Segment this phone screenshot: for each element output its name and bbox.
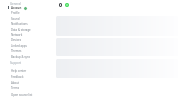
- button[interactable]: Profile: [0, 10, 52, 16]
- staticText: Linked apps: [11, 44, 27, 48]
- button[interactable]: Linked apps: [0, 43, 52, 49]
- button[interactable]: [56, 16, 178, 36]
- staticText: Open source list: [11, 93, 33, 97]
- staticText: Network: [11, 33, 23, 37]
- staticText: Help center: [11, 69, 27, 73]
- staticText: About: [11, 81, 19, 85]
- staticText: Accoun: [11, 6, 22, 10]
- staticText: Profile: [11, 11, 20, 15]
- button[interactable]: Accoun: [0, 5, 52, 11]
- button[interactable]: Sound: [0, 16, 52, 22]
- button[interactable]: [56, 38, 178, 56]
- button[interactable]: About: [0, 80, 52, 86]
- staticText: Devices: [11, 38, 21, 42]
- button[interactable]: Open source list: [0, 92, 52, 98]
- button[interactable]: Backup & sync: [0, 54, 52, 60]
- button[interactable]: Feedback: [0, 74, 52, 80]
- staticText: Backup & sync: [11, 55, 31, 59]
- button[interactable]: Online status: [65, 3, 69, 7]
- staticText: Notifications: [11, 22, 28, 26]
- button[interactable]: Terms: [0, 85, 52, 91]
- button[interactable]: Devices: [0, 37, 52, 43]
- button[interactable]: [56, 59, 178, 78]
- staticText: Feedback: [11, 75, 24, 79]
- button[interactable]: Themes: [0, 48, 52, 54]
- button[interactable]: Help center: [0, 68, 52, 74]
- staticText: Support: [10, 61, 22, 65]
- button[interactable]: Mute: [59, 3, 62, 7]
- button[interactable]: Network: [0, 32, 52, 38]
- button[interactable]: Data & storage: [0, 27, 52, 33]
- staticText: Sound: [11, 17, 20, 21]
- button[interactable]: Notifications: [0, 21, 52, 27]
- staticText: General: [10, 2, 21, 6]
- staticText: Themes: [11, 49, 22, 53]
- staticText: Data & storage: [11, 28, 31, 32]
- staticText: Terms: [11, 86, 20, 90]
